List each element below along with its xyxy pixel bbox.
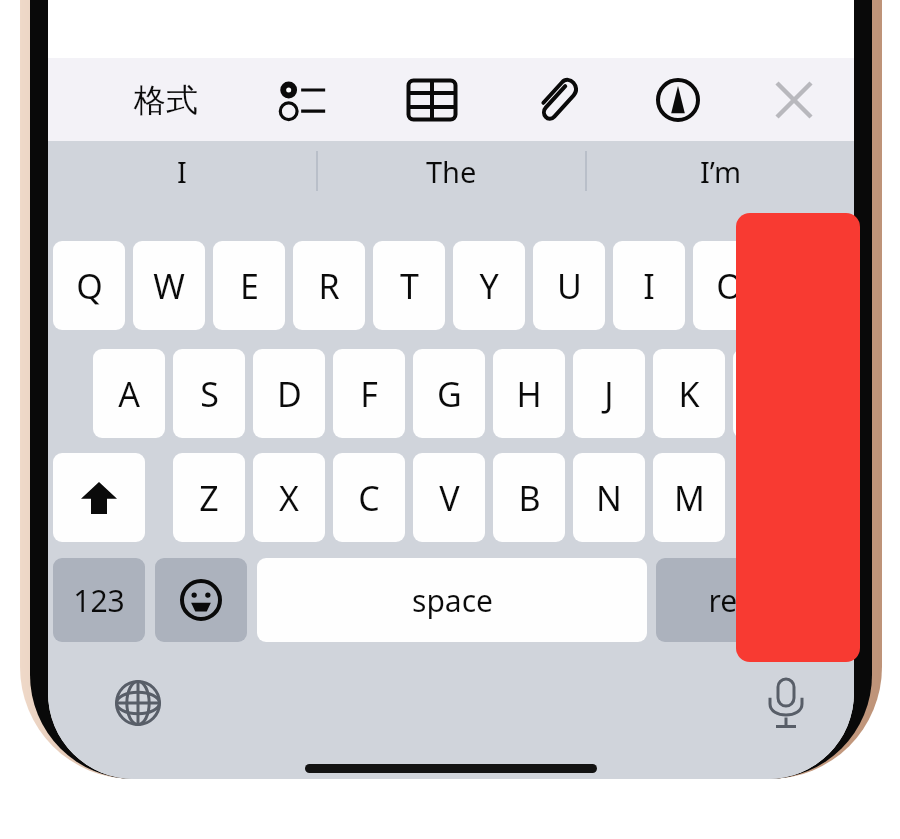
button[interactable]: V (413, 453, 485, 542)
button[interactable]: H (493, 349, 565, 438)
button[interactable]: E (213, 241, 285, 330)
staticText: R (318, 263, 340, 309)
staticText: O (716, 263, 743, 309)
button[interactable]: R (293, 241, 365, 330)
button[interactable]: C (333, 453, 405, 542)
staticText: S (200, 371, 219, 417)
button[interactable]: O (693, 241, 765, 330)
button[interactable]: Z (173, 453, 245, 542)
button[interactable]: Emoji (155, 558, 247, 642)
button[interactable]: 格式 (128, 72, 204, 128)
button[interactable]: Q (53, 241, 125, 330)
button[interactable]: I (613, 241, 685, 330)
button[interactable]: Switch keyboard (103, 668, 173, 738)
button[interactable]: F (333, 349, 405, 438)
button[interactable]: space (257, 558, 647, 642)
staticText: V (439, 475, 460, 521)
button[interactable]: I’m (587, 141, 854, 201)
button[interactable]: Y (453, 241, 525, 330)
button[interactable]: Checklist (270, 72, 340, 128)
button[interactable]: 123 (53, 558, 145, 642)
button[interactable]: J (573, 349, 645, 438)
staticText: I’m (700, 152, 742, 191)
button[interactable]: Close (760, 72, 828, 128)
staticText: F (360, 371, 378, 417)
button[interactable]: B (493, 453, 565, 542)
staticText: J (604, 371, 614, 417)
staticText: E (240, 263, 259, 309)
staticText: H (516, 371, 542, 417)
button[interactable]: M (653, 453, 725, 542)
staticText: Z (199, 475, 219, 521)
button[interactable]: K (653, 349, 725, 438)
staticText: 123 (73, 580, 125, 621)
button[interactable]: W (133, 241, 205, 330)
staticText: K (678, 371, 700, 417)
staticText: Q (76, 263, 103, 309)
button[interactable]: return (656, 558, 850, 642)
staticText: B (518, 475, 541, 521)
staticText: N (596, 475, 622, 521)
staticText: I (177, 152, 187, 191)
button[interactable]: T (373, 241, 445, 330)
staticText: D (277, 371, 302, 417)
button[interactable]: Markup (642, 70, 714, 130)
button[interactable]: I (48, 141, 316, 201)
button[interactable]: U (533, 241, 605, 330)
staticText: 格式 (134, 80, 198, 120)
button[interactable]: Dictation (751, 668, 821, 738)
staticText: Y (479, 263, 499, 309)
staticText: I (643, 263, 655, 309)
button[interactable]: X (253, 453, 325, 542)
button[interactable]: The (318, 141, 585, 201)
staticText: X (279, 475, 299, 521)
staticText: return (708, 580, 798, 621)
staticText: M (674, 475, 705, 521)
staticText: W (153, 263, 185, 309)
button[interactable]: S (173, 349, 245, 438)
button[interactable]: A (93, 349, 165, 438)
button[interactable]: D (253, 349, 325, 438)
button[interactable]: G (413, 349, 485, 438)
button[interactable]: N (573, 453, 645, 542)
staticText: C (358, 475, 380, 521)
staticText: space (412, 580, 493, 621)
button[interactable]: Table (396, 70, 468, 130)
staticText: The (426, 152, 477, 191)
staticText: T (400, 263, 419, 309)
button[interactable]: Attach (520, 70, 592, 130)
button[interactable]: Shift (53, 453, 145, 542)
staticText: U (557, 263, 582, 309)
staticText: G (437, 371, 462, 417)
staticText: A (118, 371, 140, 417)
button[interactable]: L (733, 349, 805, 438)
